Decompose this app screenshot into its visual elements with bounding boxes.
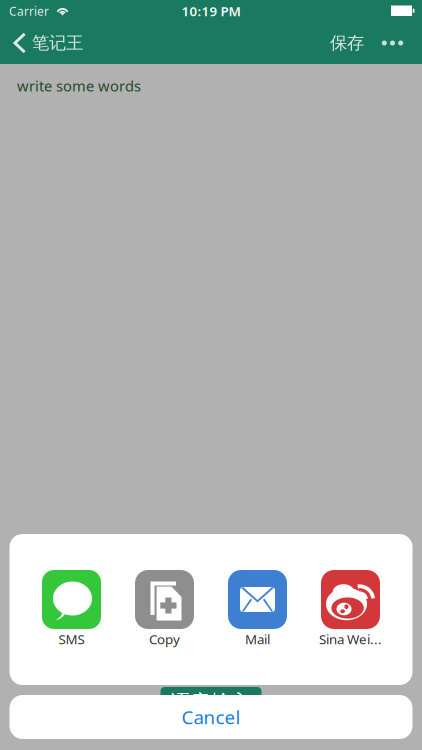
staticText: Cancel [181,705,240,729]
button[interactable]: More options [372,22,413,64]
button[interactable]: Mail [211,570,304,649]
staticText: write some words [17,76,141,95]
staticText: SMS [58,630,84,648]
staticText: 保存 [330,32,364,54]
staticText: Carrier [9,3,49,19]
staticText: 语音输入 [171,690,251,714]
button[interactable]: Copy [118,570,211,649]
button[interactable]: Sina Wei... [304,570,397,649]
staticText: 笔记王 [32,32,83,54]
button[interactable]: 笔记王 [0,22,91,64]
button[interactable]: 语音输入 [160,687,261,717]
staticText: 10:19 PM [181,2,240,20]
staticText: Copy [149,630,180,648]
staticText: Mail [245,630,270,648]
staticText: Sina Wei... [319,630,382,648]
button[interactable]: Cancel [9,695,412,739]
button[interactable]: SMS [25,570,118,649]
button[interactable]: 保存 [322,22,372,64]
